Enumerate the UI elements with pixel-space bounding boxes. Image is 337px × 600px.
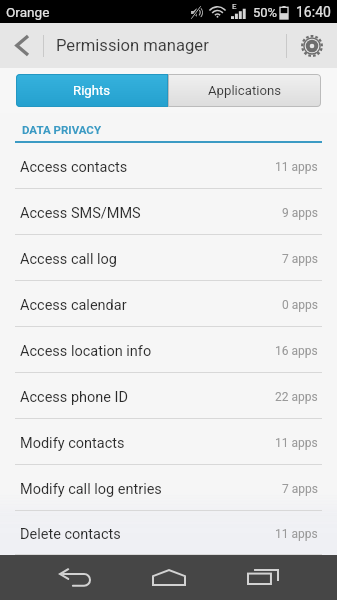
staticText: 7 apps — [282, 252, 318, 266]
staticText: DATA PRIVACY — [22, 123, 102, 136]
staticText: 9 apps — [282, 206, 318, 220]
button[interactable]: Modify call log entries — [0, 465, 337, 511]
button[interactable]: Home — [122, 555, 216, 600]
staticText: Access calendar — [20, 297, 127, 314]
button[interactable]: Access SMS/MMS — [0, 189, 337, 235]
button[interactable]: Recent apps — [216, 555, 310, 600]
staticText: Rights — [73, 83, 111, 98]
staticText: 11 apps — [275, 160, 318, 174]
button[interactable]: Access call log — [0, 235, 337, 281]
staticText: Access location info — [20, 343, 152, 360]
button[interactable]: Settings — [287, 23, 337, 68]
staticText: 16:40 — [296, 4, 331, 20]
staticText: 7 apps — [282, 482, 318, 496]
staticText: 11 apps — [275, 527, 318, 541]
staticText: Orange — [6, 4, 50, 20]
staticText: Delete contacts — [20, 526, 121, 543]
button[interactable]: Delete contacts — [0, 511, 337, 555]
button[interactable]: Modify contacts — [0, 419, 337, 465]
staticText: Access contacts — [20, 159, 128, 176]
staticText: 11 apps — [275, 436, 318, 450]
staticText: Permission manager — [56, 36, 209, 55]
staticText: Access call log — [20, 251, 117, 268]
staticText: Access phone ID — [20, 389, 129, 406]
staticText: Modify contacts — [20, 435, 125, 452]
button[interactable]: Access phone ID — [0, 373, 337, 419]
button[interactable]: Access contacts — [0, 143, 337, 189]
staticText: E — [232, 2, 237, 11]
staticText: 50% — [253, 5, 278, 20]
staticText: 22 apps — [275, 390, 318, 404]
staticText: 0 apps — [282, 298, 318, 312]
staticText: Applications — [208, 83, 282, 98]
button[interactable]: Access calendar — [0, 281, 337, 327]
button[interactable]: Back — [28, 555, 122, 600]
button[interactable]: Applications — [168, 74, 321, 107]
staticText: 16 apps — [275, 344, 318, 358]
button[interactable]: Access location info — [0, 327, 337, 373]
button[interactable]: Rights — [16, 74, 168, 107]
staticText: Access SMS/MMS — [20, 205, 141, 222]
staticText: Modify call log entries — [20, 481, 162, 498]
button[interactable]: Back — [0, 23, 43, 68]
